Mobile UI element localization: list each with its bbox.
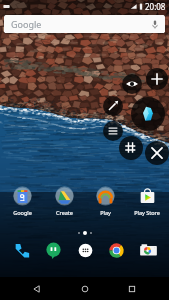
- staticText: Google: [13, 209, 32, 216]
- button[interactable]: Recents: [121, 278, 143, 300]
- button[interactable]: Create: [44, 187, 84, 216]
- button[interactable]: Chrome: [106, 240, 126, 260]
- staticText: Play Store: [134, 209, 160, 216]
- staticText: Create: [56, 209, 73, 216]
- button[interactable]: Apps: [75, 240, 95, 260]
- button[interactable]: Play: [85, 187, 125, 216]
- button[interactable]: Settings: [103, 121, 123, 141]
- staticText: Google: [11, 18, 42, 30]
- button[interactable]: Hangouts: [43, 240, 63, 260]
- button[interactable]: Home: [74, 278, 96, 300]
- staticText: Play: [100, 209, 111, 216]
- button[interactable]: Play Store: [127, 187, 167, 216]
- button[interactable]: Google: [2, 187, 42, 216]
- button[interactable]: Theme: [131, 97, 165, 131]
- button[interactable]: Back: [26, 278, 48, 300]
- button[interactable]: Preview: [122, 74, 142, 94]
- button[interactable]: Edit: [103, 96, 123, 116]
- button[interactable]: Camera: [138, 240, 158, 260]
- button[interactable]: Close: [145, 141, 169, 165]
- staticText: 20:08: [145, 1, 166, 12]
- button[interactable]: Google: [4, 15, 165, 33]
- button[interactable]: Phone: [12, 240, 32, 260]
- button[interactable]: Add: [146, 68, 168, 90]
- button[interactable]: Widgets: [119, 136, 143, 160]
